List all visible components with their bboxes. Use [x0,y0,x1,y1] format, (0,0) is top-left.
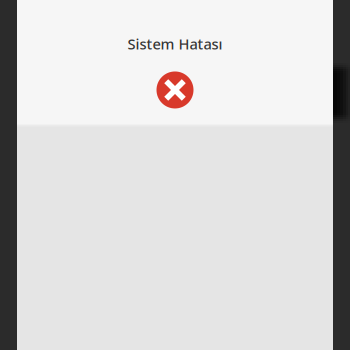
button[interactable]: Hata [156,71,193,108]
staticText: Sistem Hatası [127,34,222,53]
